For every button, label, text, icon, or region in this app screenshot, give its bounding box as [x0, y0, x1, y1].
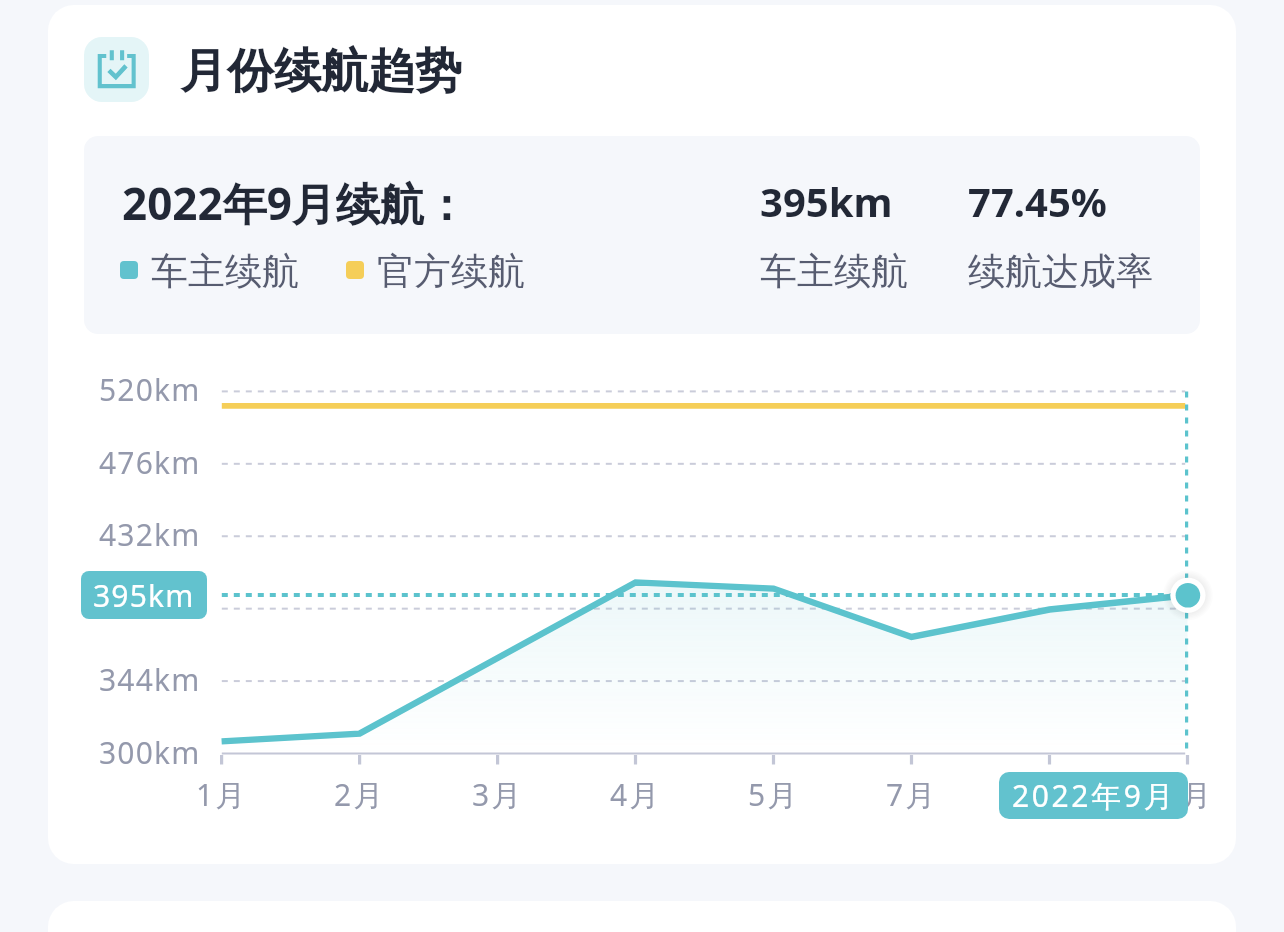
- staticText: 7月: [886, 774, 938, 815]
- staticText: 388km: [99, 587, 201, 628]
- other: Monthly range trend: [84, 37, 149, 102]
- button[interactable]: 2022年9月: [999, 772, 1188, 819]
- staticText: 4月: [610, 774, 662, 815]
- staticText: 395km: [760, 174, 893, 228]
- button[interactable]: 395km: [81, 571, 207, 619]
- staticText: 520km: [99, 369, 201, 410]
- staticText: 9月: [1162, 774, 1214, 815]
- staticText: 2022年9月续航：: [122, 173, 468, 233]
- staticText: 395km: [93, 575, 195, 616]
- staticText: 476km: [99, 442, 201, 483]
- staticText: 3月: [472, 774, 524, 815]
- staticText: 1月: [196, 774, 248, 815]
- button[interactable]: Monthly range trend: [84, 37, 462, 102]
- staticText: 77.45%: [968, 174, 1107, 228]
- staticText: 2月: [334, 774, 386, 815]
- staticText: 8月: [1024, 774, 1076, 815]
- staticText: 月份续航趋势: [180, 42, 462, 101]
- staticText: 344km: [99, 659, 201, 700]
- staticText: 300km: [99, 732, 201, 773]
- staticText: 官方续航: [377, 248, 525, 295]
- staticText: 432km: [99, 514, 201, 555]
- staticText: 2022年9月: [1012, 775, 1176, 816]
- staticText: 车主续航: [151, 248, 299, 295]
- button[interactable]: [84, 136, 1200, 334]
- staticText: 5月: [748, 774, 800, 815]
- staticText: 续航达成率: [968, 248, 1153, 295]
- staticText: 车主续航: [760, 248, 908, 295]
